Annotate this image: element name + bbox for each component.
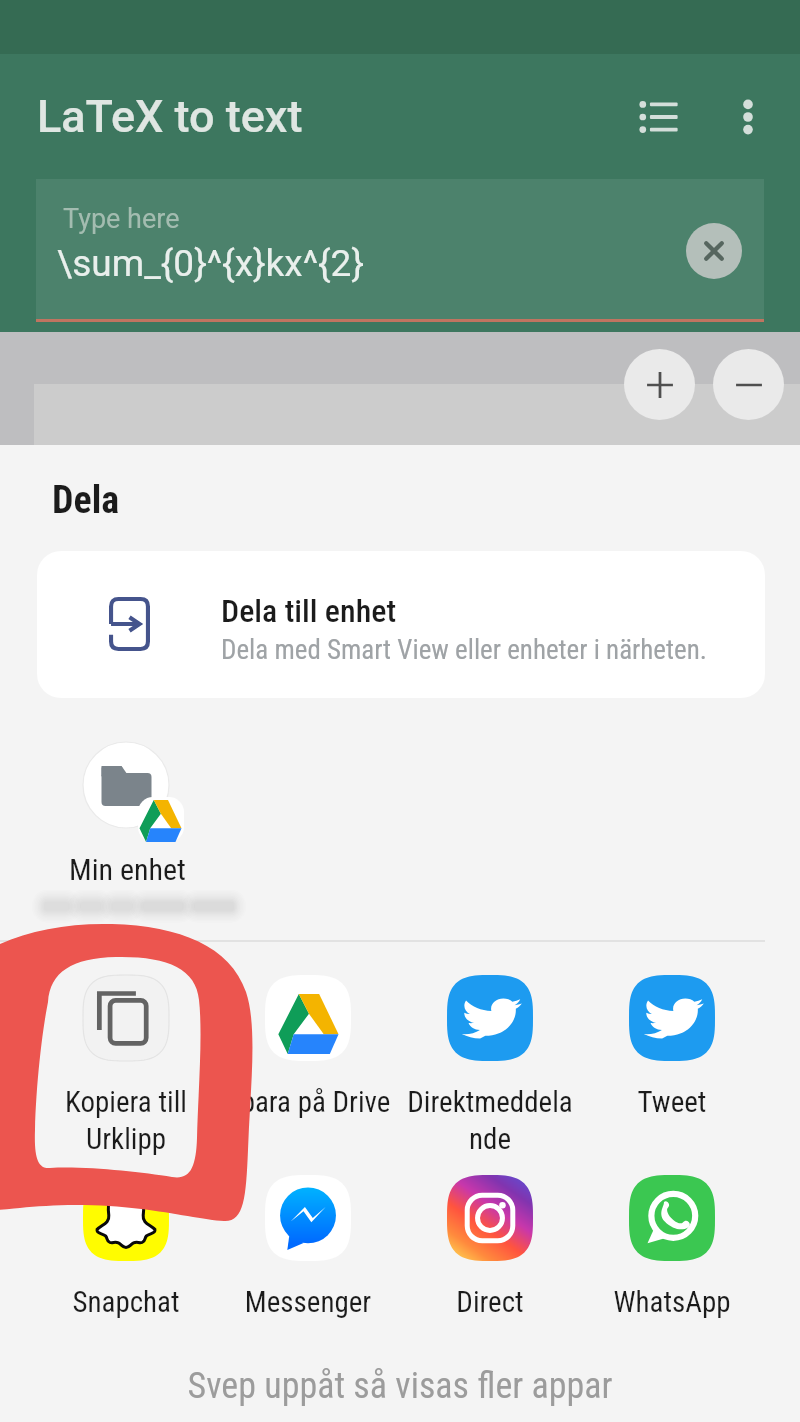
- staticText: Spara på Drive: [217, 1085, 399, 1119]
- staticText: Dela med Smart View eller enheter i närh…: [221, 634, 707, 666]
- staticText: LaTeX to text: [37, 90, 303, 143]
- staticText: Direct: [399, 1285, 581, 1319]
- button[interactable]: Tweet: [581, 975, 763, 1119]
- staticText: Dela: [52, 478, 120, 523]
- button[interactable]: Messenger: [217, 1175, 399, 1319]
- button[interactable]: Zoom in: [624, 349, 695, 420]
- button[interactable]: Kopiera till Urklipp: [35, 975, 217, 1156]
- button[interactable]: List view: [624, 81, 696, 153]
- staticText: Snapchat: [35, 1285, 217, 1319]
- staticText: WhatsApp: [581, 1285, 763, 1319]
- button[interactable]: Clear text: [686, 223, 742, 279]
- staticText: Dela till enhet: [221, 592, 397, 630]
- button[interactable]: More options: [712, 81, 784, 153]
- button[interactable]: Direct: [399, 1175, 581, 1319]
- button[interactable]: WhatsApp: [581, 1175, 763, 1319]
- button[interactable]: Dela till enhet: [37, 551, 765, 698]
- staticText: Type here: [63, 203, 180, 235]
- staticText: Kopiera till Urklipp: [35, 1085, 217, 1156]
- button[interactable]: Min enhet: [40, 735, 215, 885]
- button[interactable]: Zoom out: [713, 349, 784, 420]
- staticText: \sum_{0}^{x}kx^{2}: [57, 242, 364, 285]
- button[interactable]: Spara på Drive: [217, 975, 399, 1119]
- staticText: Tweet: [581, 1085, 763, 1119]
- button[interactable]: Snapchat: [35, 1175, 217, 1319]
- staticText: Direktmeddela nde: [399, 1085, 581, 1156]
- staticText: Min enhet: [69, 852, 186, 887]
- button[interactable]: Direktmeddela nde: [399, 975, 581, 1156]
- staticText: Messenger: [217, 1285, 399, 1319]
- staticText: Svep uppåt så visas fler appar: [0, 1365, 800, 1407]
